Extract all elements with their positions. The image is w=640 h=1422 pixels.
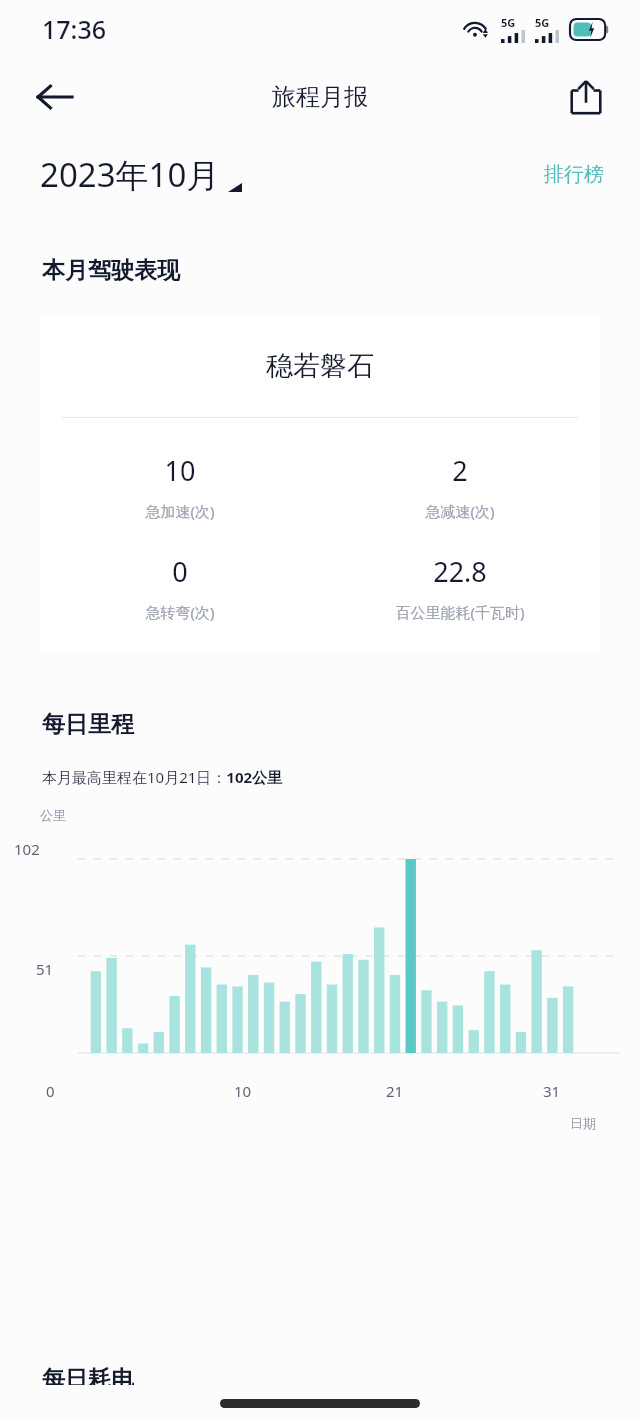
button[interactable]: 2023年10月: [40, 152, 242, 197]
button[interactable]: 稳若磐石: [40, 315, 600, 652]
button[interactable]: 排行榜: [538, 154, 610, 195]
staticText: 17:36: [42, 12, 107, 46]
staticText: 5G: [535, 15, 550, 30]
staticText: 2: [320, 452, 600, 489]
staticText: 急加速(次): [40, 501, 320, 521]
staticText: 每日里程: [42, 710, 134, 739]
staticText: 22.8: [320, 553, 600, 590]
staticText: 急转弯(次): [40, 602, 320, 622]
staticText: 21: [386, 1081, 404, 1101]
staticText: 本月最高里程在10月21日：102公里: [42, 767, 283, 787]
staticText: 旅程月报: [272, 82, 368, 112]
staticText: 急减速(次): [320, 501, 600, 521]
staticText: 本月驾驶表现: [42, 256, 180, 285]
staticText: 百公里能耗(千瓦时): [320, 602, 600, 622]
staticText: 日期: [0, 1115, 596, 1131]
staticText: 0: [40, 553, 320, 590]
button[interactable]: Share: [558, 69, 614, 125]
staticText: 31: [543, 1081, 561, 1101]
staticText: 公里: [40, 807, 66, 823]
staticText: 排行榜: [544, 162, 604, 187]
staticText: 每日耗电: [42, 1365, 134, 1385]
staticText: 10: [234, 1081, 252, 1101]
staticText: 稳若磐石: [40, 349, 600, 383]
staticText: 2023年10月: [40, 152, 220, 197]
staticText: 102: [14, 839, 40, 859]
staticText: 10: [40, 452, 320, 489]
staticText: 5G: [501, 15, 516, 30]
staticText: 51: [36, 959, 54, 979]
button[interactable]: Back: [26, 69, 82, 125]
staticText: 0: [46, 1081, 55, 1101]
